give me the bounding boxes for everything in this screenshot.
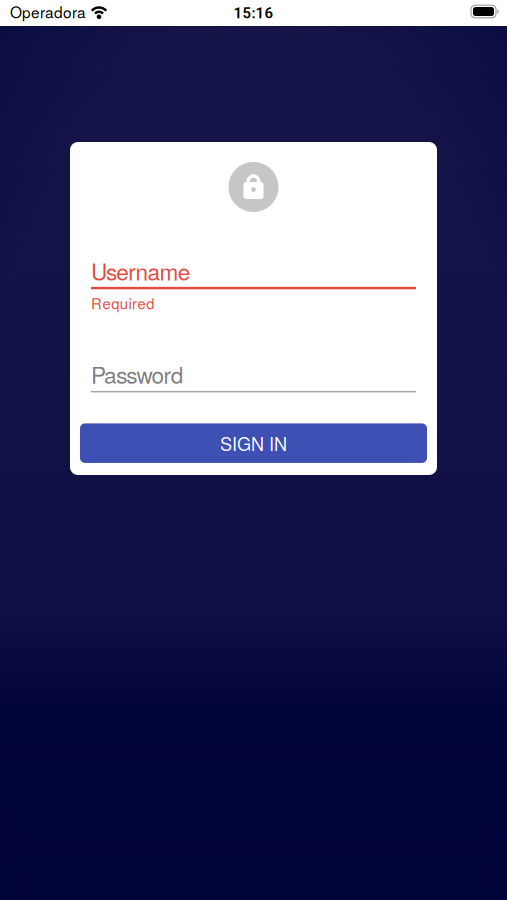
staticText: Operadora bbox=[10, 0, 86, 23]
button[interactable]: Username bbox=[91, 254, 416, 289]
staticText: Password bbox=[91, 358, 184, 390]
staticText: Username bbox=[91, 254, 191, 287]
button[interactable]: SIGN IN bbox=[80, 423, 427, 463]
staticText: SIGN IN bbox=[220, 430, 287, 456]
staticText: Required bbox=[91, 292, 154, 313]
button[interactable]: Password bbox=[91, 358, 416, 392]
staticText: 15:16 bbox=[233, 4, 273, 22]
